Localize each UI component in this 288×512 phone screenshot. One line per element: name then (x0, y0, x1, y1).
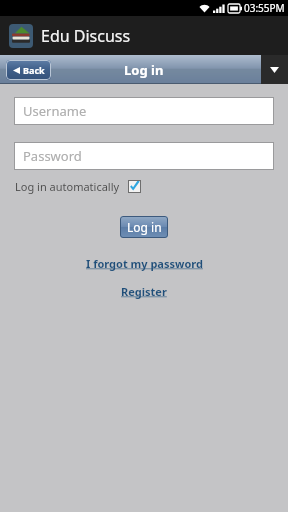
button[interactable]: Log in automatically (15, 179, 141, 194)
staticText: 03:55PM (244, 1, 285, 15)
staticText: Password (23, 147, 82, 165)
button[interactable]: Register (119, 282, 169, 301)
button[interactable]: Back (6, 60, 51, 80)
button[interactable]: Username (14, 97, 274, 125)
staticText: Edu Discuss (41, 25, 131, 47)
staticText: Log in (127, 219, 162, 235)
staticText: Log in (124, 61, 164, 79)
staticText: I forgot my password (86, 256, 203, 271)
staticText: Username (23, 102, 87, 120)
staticText: Back (23, 64, 45, 76)
staticText: Register (121, 284, 167, 299)
button[interactable]: Open menu (261, 55, 288, 84)
staticText: Log in automatically (15, 179, 120, 194)
button[interactable]: Log in (120, 216, 168, 238)
button[interactable]: I forgot my password (84, 254, 205, 273)
button[interactable]: Password (14, 142, 274, 170)
